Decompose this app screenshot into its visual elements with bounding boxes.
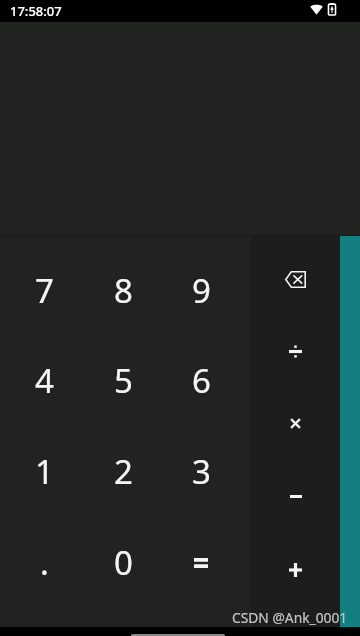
button[interactable]: Plus [251,533,340,606]
button[interactable]: 0 [84,517,162,608]
button[interactable]: 2 [84,426,162,517]
button[interactable]: 1 [5,426,84,517]
staticText: 8 [114,268,133,313]
button[interactable]: Equals [162,517,240,608]
staticText: 3 [192,449,211,494]
button[interactable]: 9 [162,245,240,335]
staticText: 0 [114,540,133,585]
button[interactable]: 6 [162,335,240,426]
button[interactable]: Multiply [251,387,340,460]
staticText: 9 [192,268,211,313]
button[interactable]: Backspace [251,243,340,315]
button[interactable]: 7 [5,245,84,335]
staticText: . [40,540,49,585]
staticText: CSDN @Ank_0001 [232,608,348,627]
staticText: 2 [114,449,133,494]
button[interactable]: Decimal point [5,517,84,608]
staticText: 1 [35,449,54,494]
button[interactable]: 3 [162,426,240,517]
button[interactable]: 4 [5,335,84,426]
staticText: 17:58:07 [10,2,62,20]
button[interactable]: Minus [251,460,340,533]
button[interactable]: 5 [84,335,162,426]
button[interactable]: Divide [251,315,340,387]
staticText: 7 [35,268,54,313]
button[interactable]: 8 [84,245,162,335]
staticText: 4 [35,358,54,403]
staticText: 6 [192,358,211,403]
staticText: 5 [114,358,133,403]
